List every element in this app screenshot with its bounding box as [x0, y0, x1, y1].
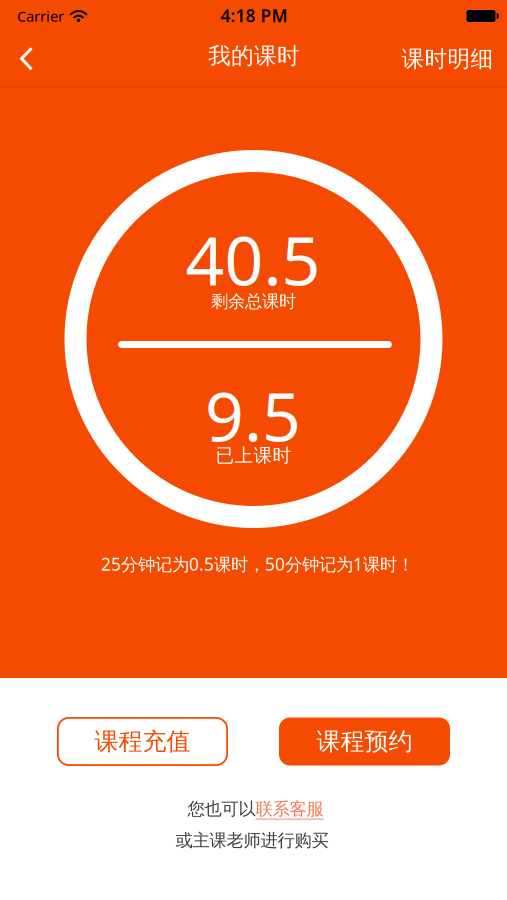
- staticText: 您也可以: [187, 798, 255, 820]
- button[interactable]: 课时明细: [391, 33, 503, 85]
- staticText: 联系客服: [255, 798, 323, 820]
- staticText: 课时明细: [401, 45, 493, 73]
- button[interactable]: 课程预约: [279, 717, 450, 765]
- staticText: 课程充值: [94, 727, 190, 756]
- staticText: Carrier: [17, 6, 64, 26]
- staticText: 课程预约: [316, 727, 412, 756]
- button[interactable]: Back: [0, 29, 47, 88]
- staticText: 40.5: [185, 214, 320, 304]
- staticText: 已上课时: [215, 444, 291, 467]
- staticText: 剩余总课时: [211, 291, 296, 312]
- button[interactable]: 联系客服: [255, 798, 323, 820]
- button[interactable]: 课程充值: [57, 717, 228, 766]
- staticText: 9.5: [205, 370, 301, 460]
- staticText: 或主课老师进行购买: [175, 830, 328, 851]
- staticText: 4:18 PM: [220, 4, 287, 27]
- staticText: 我的课时: [208, 42, 300, 70]
- staticText: 25分钟记为0.5课时，50分钟记为1课时！: [101, 552, 414, 575]
